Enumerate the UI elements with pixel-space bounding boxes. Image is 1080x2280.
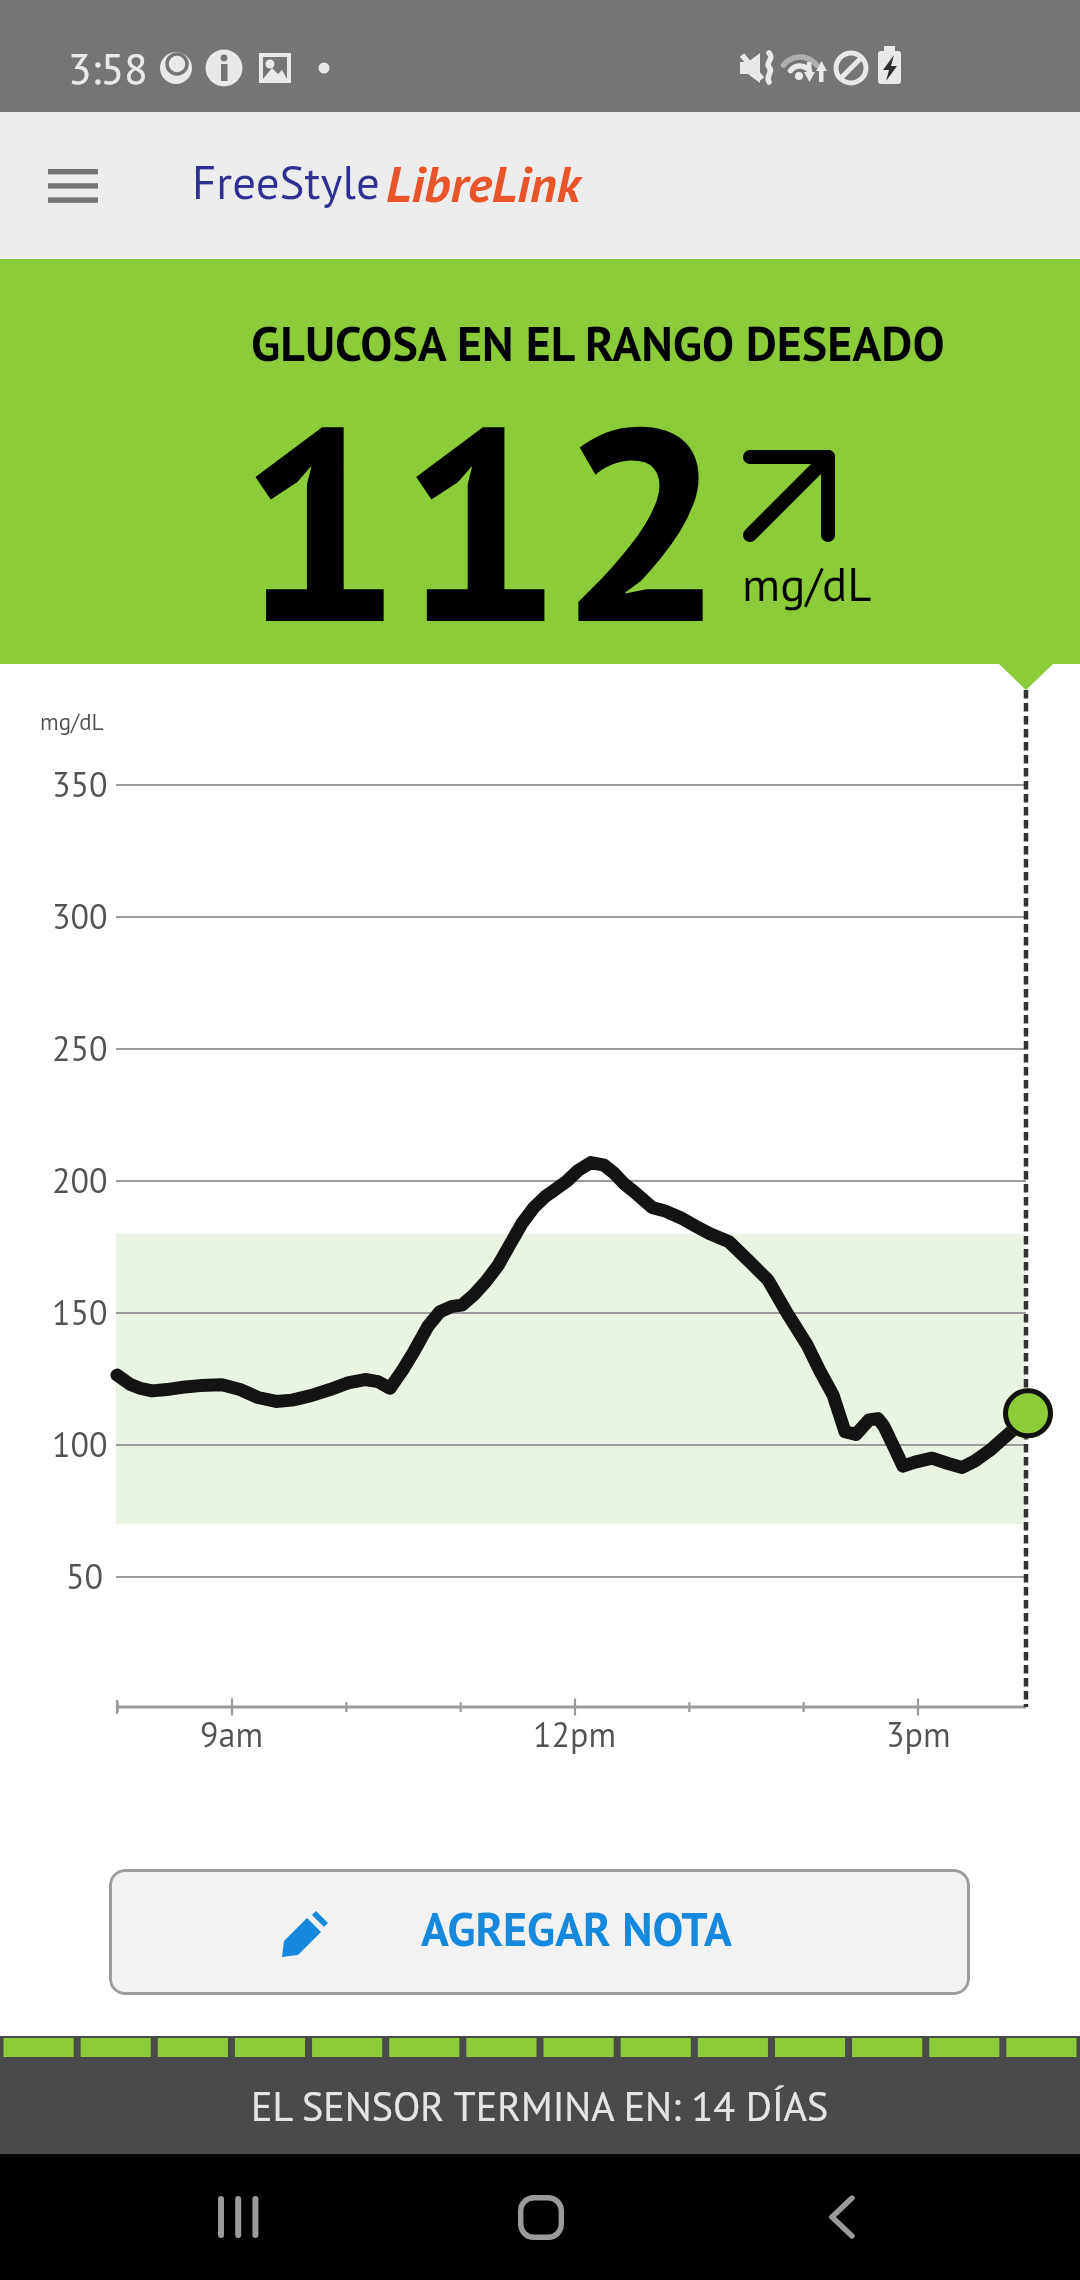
staticText: 12pm [533,1712,617,1756]
staticText: 200 [52,1158,108,1202]
staticText: mg/dL [742,553,872,614]
button[interactable]: Open navigation menu [13,126,133,246]
staticText: 3pm [886,1712,951,1756]
staticText: GLUCOSA EN EL RANGO DESEADO [251,312,945,374]
staticText: 112 [240,344,723,696]
staticText: 50 [66,1554,104,1598]
staticText: 9am [200,1712,264,1756]
staticText: 3:58 [68,40,148,96]
staticText: mg/dL [40,707,104,737]
staticText: 300 [52,894,108,938]
button[interactable]: AGREGAR NOTA [109,1869,970,1995]
staticText: 250 [52,1026,108,1070]
button[interactable]: Back [720,2154,1080,2280]
button[interactable]: Recent apps [0,2154,360,2280]
staticText: FreeStyle [192,151,380,212]
staticText: LibreLink [386,150,581,216]
staticText: 150 [52,1290,108,1334]
button[interactable]: EL SENSOR TERMINA EN: 14 DÍAS [0,2036,1080,2154]
staticText: AGREGAR NOTA [421,1899,732,1959]
staticText: EL SENSOR TERMINA EN: 14 DÍAS [251,2080,829,2132]
button[interactable]: Home [360,2154,720,2280]
staticText: 350 [52,762,108,806]
staticText: 100 [52,1422,108,1466]
